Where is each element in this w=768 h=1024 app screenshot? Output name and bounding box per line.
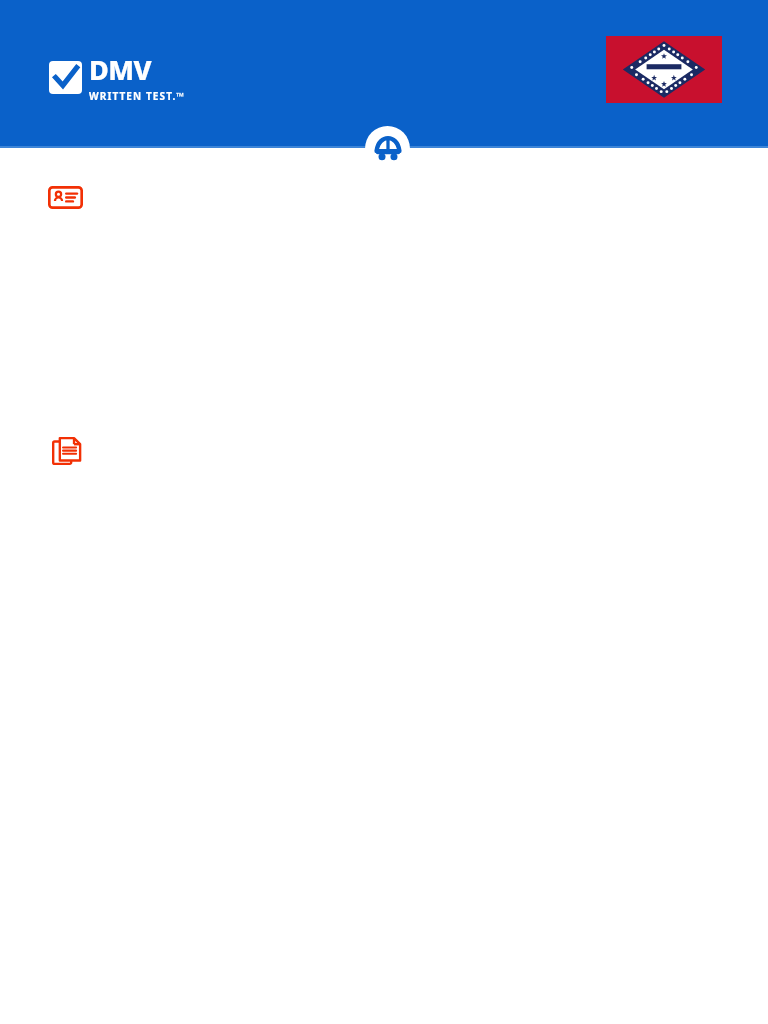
button[interactable]: Arkansas	[606, 36, 722, 103]
button[interactable]: Vehicle	[365, 126, 410, 171]
button[interactable]: Driver license	[48, 186, 83, 209]
staticText: WRITTEN TEST.™	[89, 89, 186, 103]
button[interactable]: DMV Written Test home	[49, 51, 186, 103]
button[interactable]: Documents	[52, 437, 81, 465]
staticText: DMV	[89, 51, 152, 88]
